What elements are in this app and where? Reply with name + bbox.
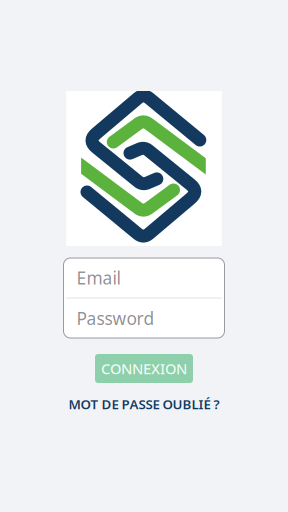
button[interactable]: CONNEXION: [95, 354, 193, 383]
staticText: Email: [76, 266, 120, 289]
staticText: Password: [76, 307, 154, 330]
staticText: MOT DE PASSE OUBLIÉ ?: [68, 395, 219, 413]
button[interactable]: MOT DE PASSE OUBLIÉ ?: [68, 394, 219, 414]
staticText: CONNEXION: [101, 359, 187, 378]
